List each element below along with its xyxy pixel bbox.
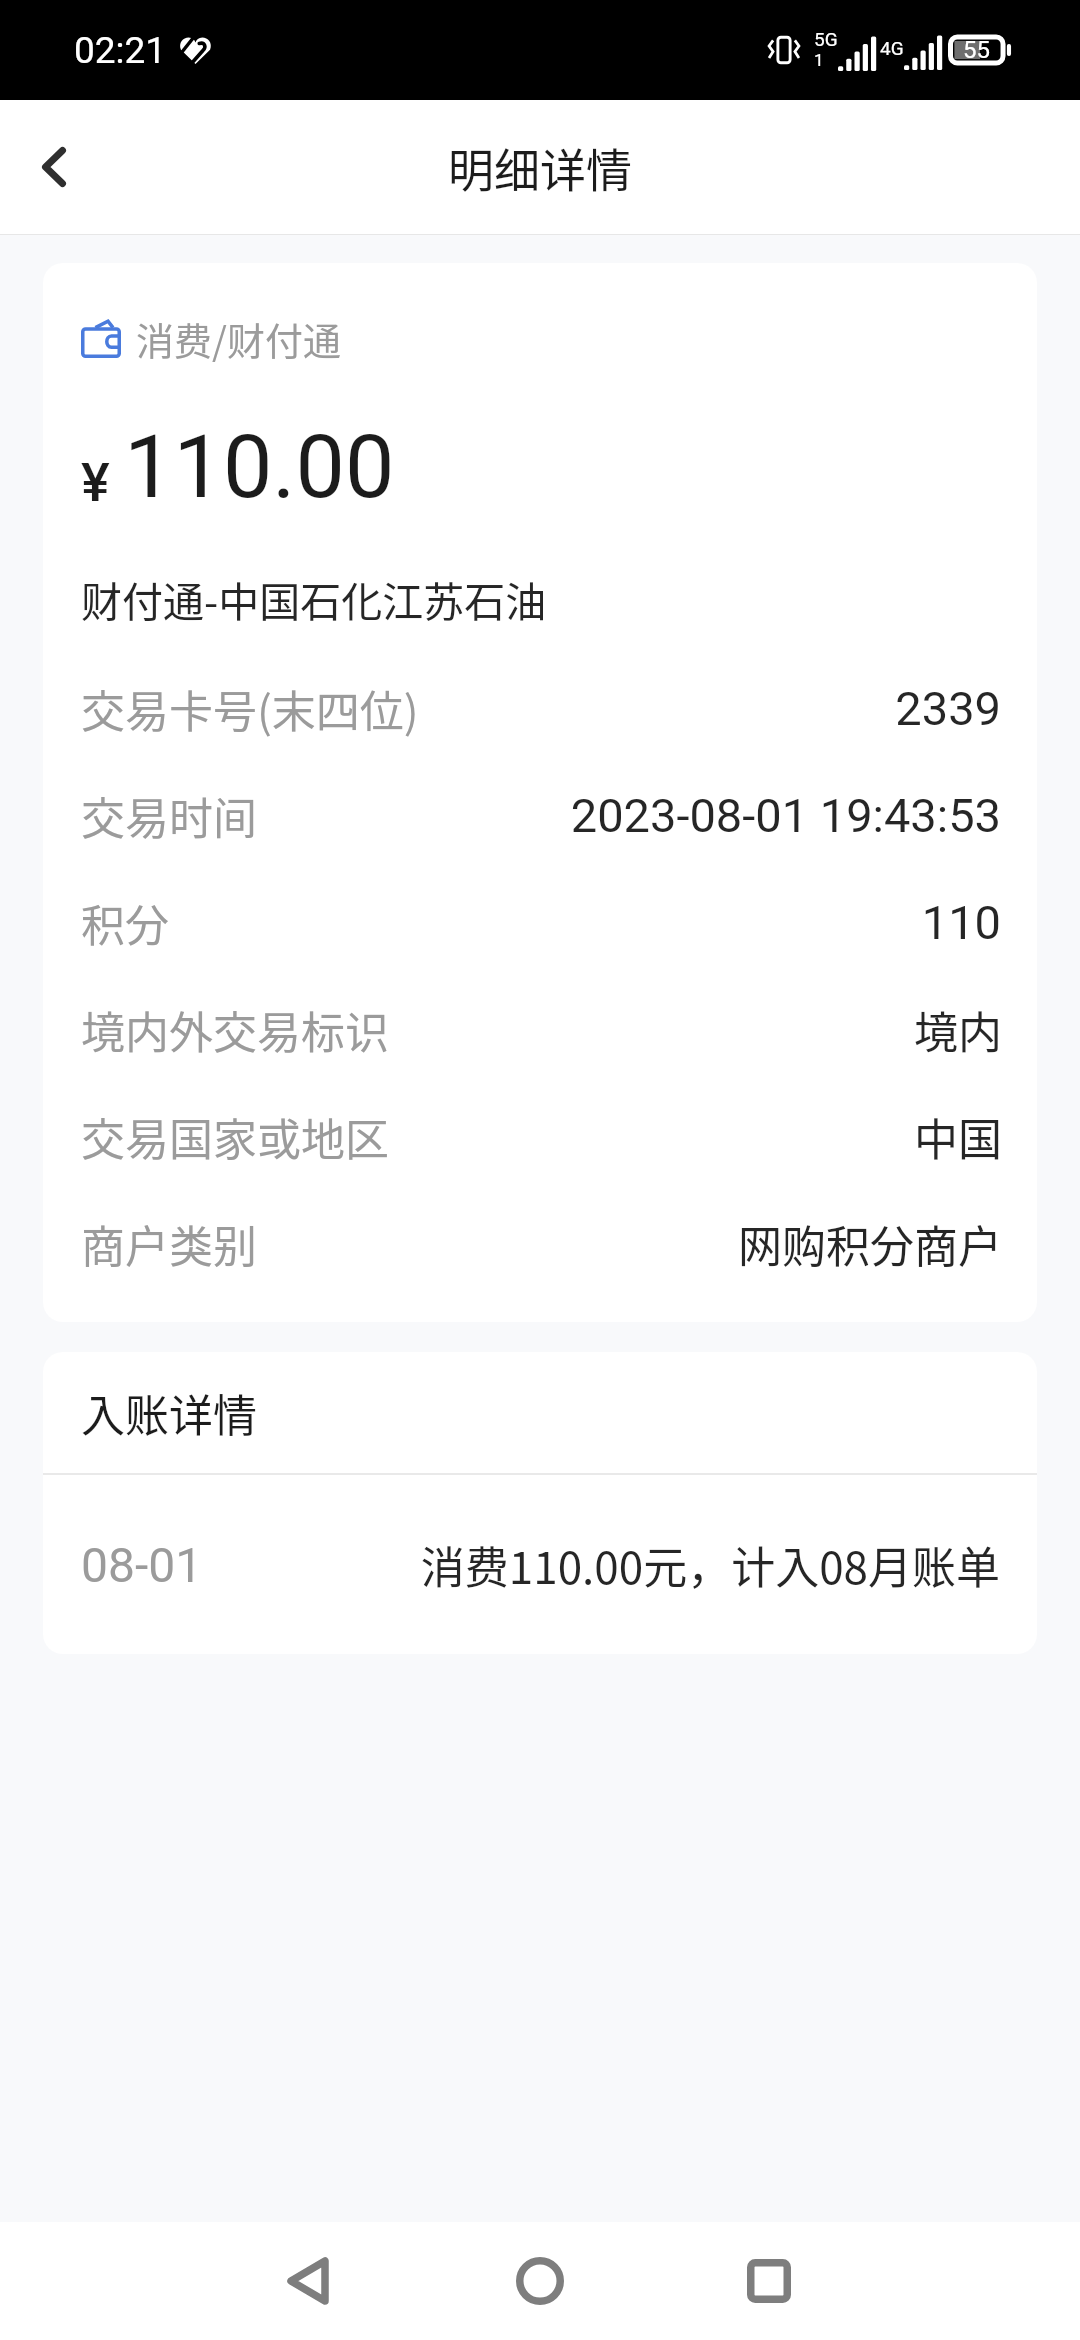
staticText: 消费/财付通 [136, 311, 341, 366]
button[interactable]: Home [475, 2222, 605, 2340]
staticText: 消费110.00元，计入08月账单 [203, 1533, 1000, 1597]
button[interactable]: Navigate back [243, 2222, 373, 2340]
staticText: 入账详情 [81, 1381, 257, 1445]
staticText: 商户类别 [81, 1212, 257, 1276]
staticText: 交易时间 [81, 784, 257, 848]
staticText: 02:21 [74, 29, 167, 72]
staticText: 交易国家或地区 [81, 1105, 389, 1169]
staticText: 2339 [429, 681, 1001, 736]
staticText: 110.00 [124, 415, 395, 518]
staticText: 交易卡号(末四位) [81, 677, 419, 741]
staticText: 财付通-中国石化江苏石油 [81, 569, 547, 628]
staticText: 中国 [399, 1105, 1002, 1169]
staticText: 境内外交易标识 [81, 998, 389, 1062]
staticText: 2023-08-01 19:43:53 [267, 788, 1001, 843]
staticText: 明细详情 [448, 134, 632, 201]
staticText: 境内 [399, 998, 1002, 1062]
staticText: ¥ [81, 451, 110, 514]
staticText: 4G [880, 37, 904, 59]
button[interactable]: Back [0, 100, 108, 234]
staticText: 积分 [81, 891, 169, 955]
staticText: 5G [814, 28, 838, 50]
staticText: 08-01 [81, 1537, 203, 1593]
button[interactable]: Recent apps [704, 2222, 834, 2340]
staticText: 55 [963, 36, 990, 64]
staticText: 110 [179, 895, 1001, 950]
staticText: 网购积分商户 [267, 1212, 1002, 1276]
staticText: 1 [814, 50, 824, 70]
